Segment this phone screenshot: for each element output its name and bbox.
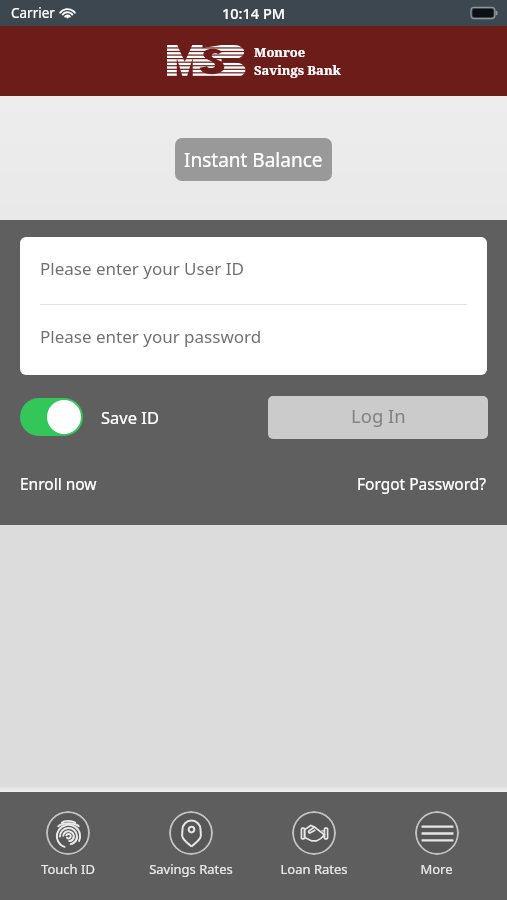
button[interactable]: Loan Rates — [252, 792, 375, 900]
button[interactable]: Savings Rates — [129, 792, 252, 900]
staticText: More — [420, 860, 453, 878]
staticText: Enroll now — [20, 473, 97, 494]
staticText: Log In — [351, 403, 406, 428]
staticText: Savings Bank — [254, 61, 341, 79]
button[interactable]: Save ID toggle — [20, 398, 83, 436]
button[interactable]: Enroll now — [20, 473, 97, 494]
button[interactable]: Forgot Password? — [357, 473, 487, 494]
staticText: Please enter your password — [40, 325, 262, 348]
button[interactable]: Log In — [268, 396, 488, 439]
staticText: 10:14 PM — [222, 3, 286, 23]
staticText: Please enter your User ID — [40, 257, 244, 280]
button[interactable]: Instant Balance — [175, 138, 332, 181]
staticText: Forgot Password? — [357, 473, 487, 494]
staticText: Touch ID — [41, 860, 95, 878]
staticText: Save ID — [101, 406, 159, 428]
staticText: Monroe — [254, 43, 306, 61]
staticText: Loan Rates — [280, 860, 348, 878]
button[interactable]: Please enter your User ID — [20, 237, 487, 304]
staticText: Savings Rates — [149, 860, 233, 878]
button[interactable]: More — [375, 792, 498, 900]
staticText: Instant Balance — [184, 147, 323, 173]
button[interactable]: Touch ID — [6, 792, 129, 900]
staticText: Carrier — [11, 4, 55, 22]
button[interactable]: Please enter your password — [20, 305, 487, 375]
